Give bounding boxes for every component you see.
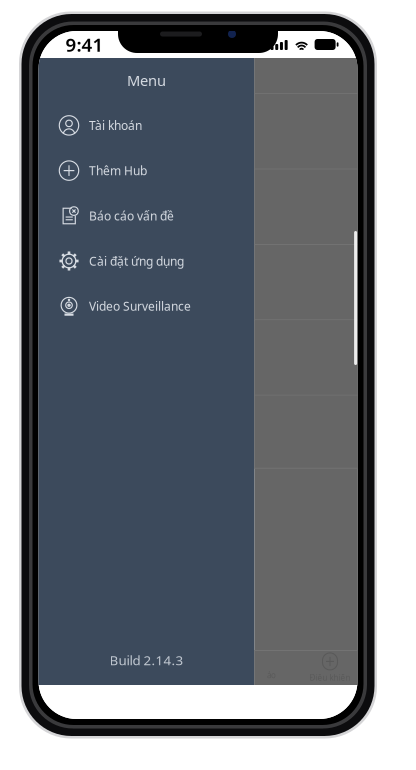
staticText: ảo <box>267 670 276 680</box>
button[interactable]: Báo cáo vấn đề <box>38 193 254 238</box>
button[interactable]: Thêm Hub <box>38 148 254 193</box>
staticText: Điều khiển <box>309 672 350 683</box>
button[interactable]: Tài khoản <box>38 103 254 148</box>
staticText: Báo cáo vấn đề <box>89 208 174 224</box>
button[interactable]: Cài đặt ứng dụng <box>38 238 254 284</box>
staticText: Menu <box>127 71 166 90</box>
staticText: Thêm Hub <box>89 163 147 178</box>
button[interactable]: ảo <box>254 651 288 685</box>
staticText: Tài khoản <box>89 117 142 133</box>
staticText: Build 2.14.3 <box>109 651 183 669</box>
staticText: 9:41 <box>65 32 103 57</box>
staticText: Cài đặt ứng dụng <box>89 253 184 269</box>
staticText: Video Surveillance <box>89 298 191 314</box>
button[interactable]: Video Surveillance <box>38 284 254 329</box>
